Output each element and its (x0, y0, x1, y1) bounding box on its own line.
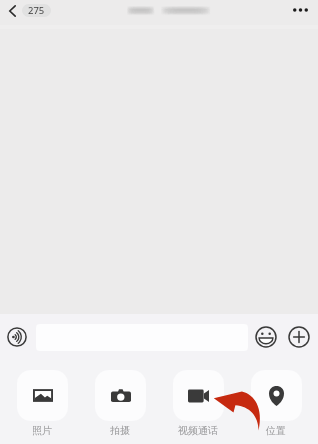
button[interactable]: 拍摄 (87, 370, 153, 437)
button[interactable]: 位置 (243, 370, 309, 437)
staticText: 位置 (266, 424, 286, 437)
button[interactable]: 视频通话 (165, 370, 231, 437)
button[interactable]: Back (0, 2, 57, 19)
staticText: 视频通话 (178, 424, 218, 437)
staticText: 照片 (32, 424, 52, 437)
button[interactable]: Emoji (249, 319, 282, 355)
button[interactable]: 照片 (9, 370, 75, 437)
button[interactable]: Voice input (0, 319, 34, 355)
staticText: 拍摄 (110, 424, 130, 437)
button[interactable]: More options (283, 1, 318, 19)
button[interactable]: More functions (282, 319, 315, 355)
staticText: 275 (28, 4, 45, 17)
